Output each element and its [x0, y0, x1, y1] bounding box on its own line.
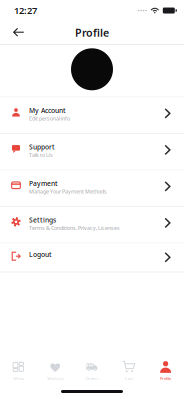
button[interactable]: Menu [0, 360, 37, 381]
button[interactable]: Payment [0, 170, 184, 206]
button[interactable]: Wish List [37, 360, 74, 381]
button[interactable]: Back [7, 22, 31, 42]
button[interactable]: Logout [0, 243, 184, 271]
staticText: Support [29, 143, 55, 151]
staticText: Logout [29, 250, 52, 259]
staticText: Payment [29, 179, 58, 188]
button[interactable]: Support [0, 134, 184, 169]
button[interactable]: My Account [0, 97, 184, 133]
button[interactable]: Profile [147, 360, 184, 381]
button[interactable]: Settings [0, 207, 184, 242]
staticText: Orders [85, 376, 98, 381]
button[interactable]: Cart [110, 360, 147, 381]
staticText: Manage Your Payment Methods [29, 188, 107, 195]
staticText: Cart [125, 376, 133, 381]
staticText: Talk to Us [29, 151, 53, 159]
button[interactable]: Orders [74, 360, 110, 381]
staticText: Profile [75, 25, 109, 40]
staticText: Settings [29, 216, 56, 224]
staticText: Menu [13, 376, 23, 381]
staticText: Terms & Conditions, Privacy, Licenses [29, 224, 120, 232]
staticText: Wish List [47, 376, 63, 381]
staticText: My Account [29, 106, 66, 115]
staticText: Profile [160, 376, 171, 381]
staticText: 12:27 [14, 4, 37, 17]
staticText: Edit personal info [29, 115, 70, 122]
